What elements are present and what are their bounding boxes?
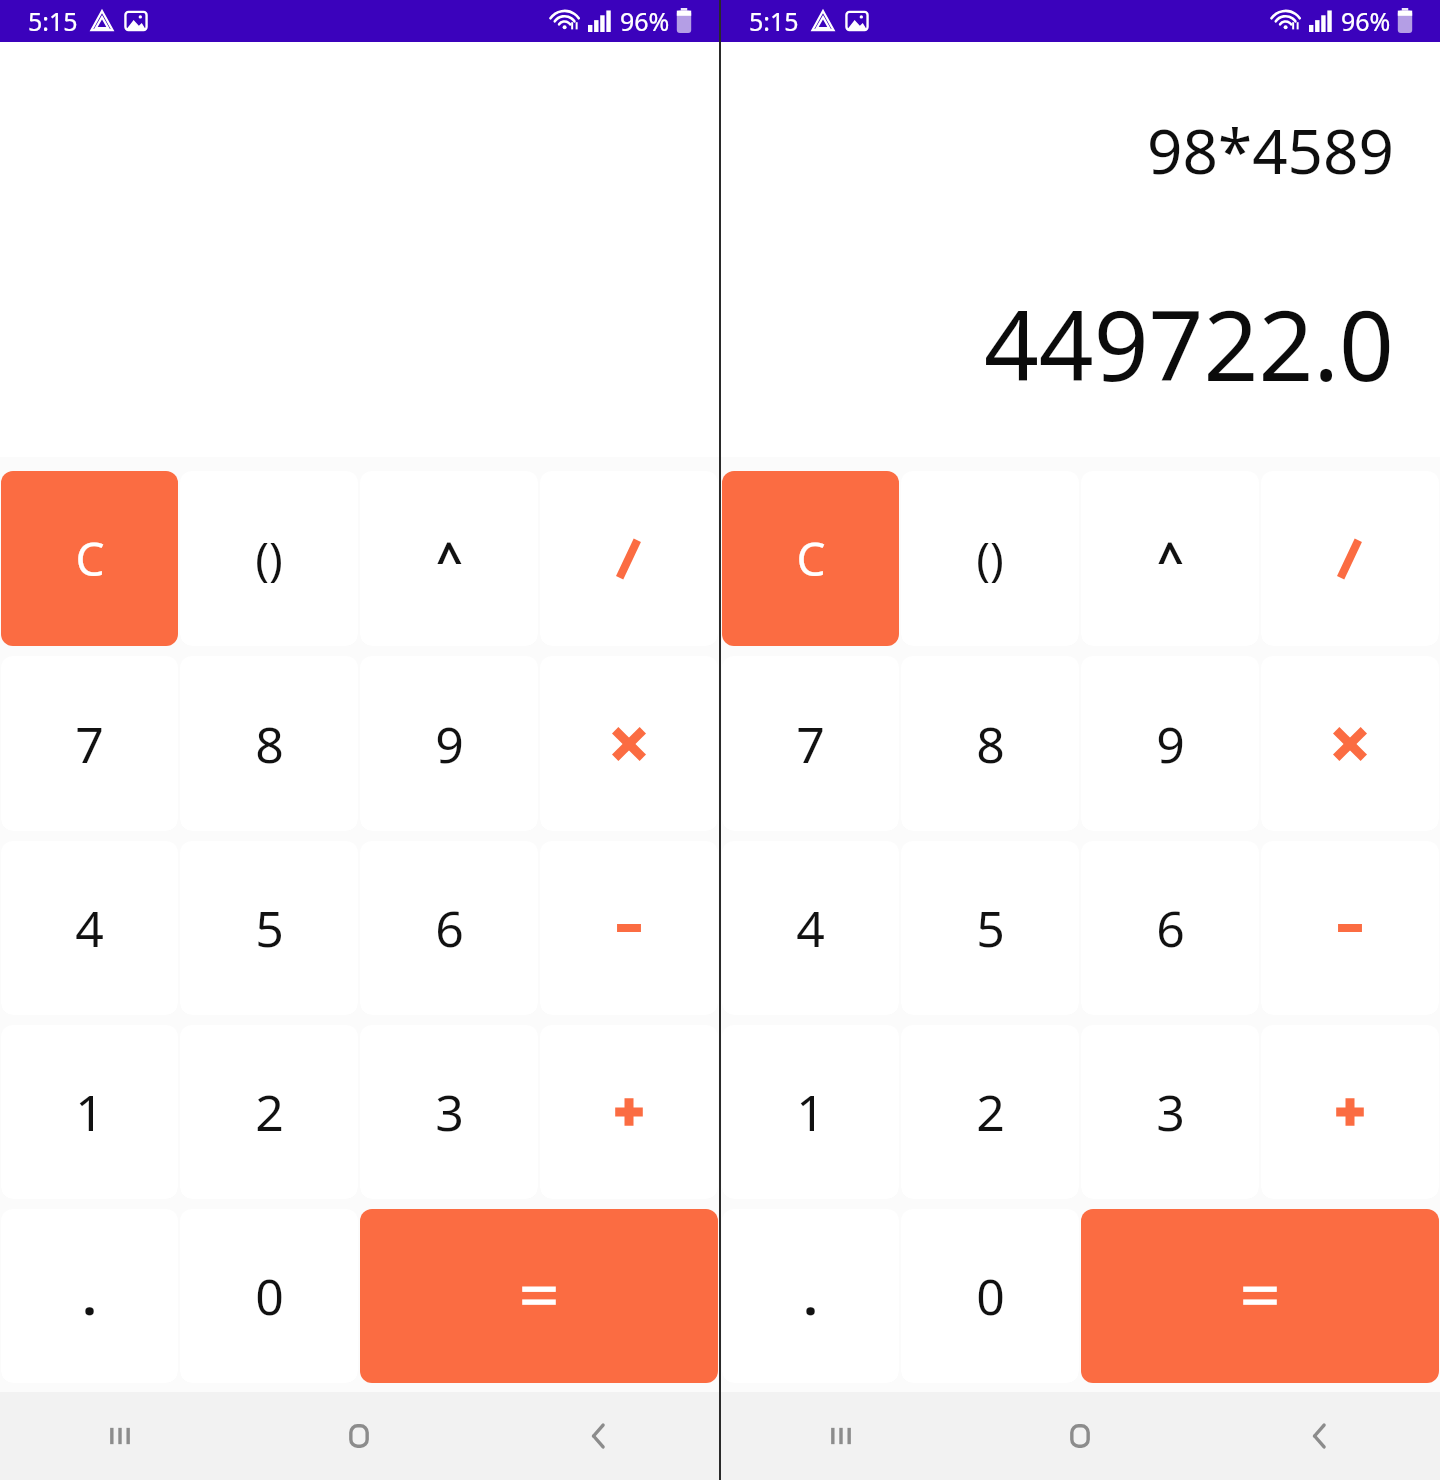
other: Divide <box>1324 533 1376 585</box>
staticText: 6 <box>1156 894 1185 962</box>
staticText: 4 <box>75 894 104 962</box>
staticText: 1 <box>796 1078 825 1146</box>
button[interactable]: . <box>722 1209 899 1383</box>
button[interactable]: 8 <box>180 656 358 831</box>
staticText: 5:15 <box>28 4 78 38</box>
button[interactable]: Back <box>479 1392 719 1480</box>
button[interactable]: () <box>901 471 1079 646</box>
button[interactable]: 4 <box>722 841 899 1015</box>
button[interactable]: Home <box>239 1392 479 1480</box>
button[interactable]: Plus <box>1261 1025 1439 1199</box>
staticText: 9 <box>1156 710 1185 778</box>
staticText: 98*4589 <box>1147 108 1394 192</box>
other: Minus <box>1327 905 1373 951</box>
button[interactable]: Plus <box>540 1025 718 1199</box>
staticText: 2 <box>255 1078 284 1146</box>
button[interactable]: . <box>1 1209 178 1383</box>
button[interactable]: Home <box>960 1392 1200 1480</box>
button[interactable]: Divide <box>540 471 718 646</box>
button[interactable]: 5 <box>180 841 358 1015</box>
staticText: 6 <box>435 894 464 962</box>
staticText: 5 <box>976 894 1005 962</box>
staticText: 5:15 <box>749 4 799 38</box>
button[interactable]: 0 <box>180 1209 358 1383</box>
button[interactable]: Recents <box>0 1392 239 1480</box>
button[interactable]: 5 <box>901 841 1079 1015</box>
button[interactable]: 2 <box>901 1025 1079 1199</box>
other: Multiply <box>606 721 652 767</box>
staticText: 449722.0 <box>983 278 1394 409</box>
staticText: 96% <box>620 4 670 38</box>
button[interactable]: 7 <box>722 656 899 831</box>
staticText: () <box>255 527 283 590</box>
button[interactable]: 1 <box>722 1025 899 1199</box>
staticText: 8 <box>255 710 284 778</box>
other: Plus <box>606 1089 652 1135</box>
staticText: 9 <box>435 710 464 778</box>
button[interactable]: Minus <box>1261 841 1439 1015</box>
button[interactable]: Equals <box>1081 1209 1439 1383</box>
other: Plus <box>1327 1089 1373 1135</box>
button[interactable]: Recents <box>721 1392 960 1480</box>
staticText: 2 <box>976 1078 1005 1146</box>
staticText: 96% <box>1341 4 1391 38</box>
staticText: 4 <box>796 894 825 962</box>
staticText: . <box>82 1262 97 1330</box>
button[interactable]: ^ <box>360 471 538 646</box>
button[interactable]: 8 <box>901 656 1079 831</box>
button[interactable]: 6 <box>360 841 538 1015</box>
button[interactable]: 3 <box>1081 1025 1259 1199</box>
button[interactable]: 7 <box>1 656 178 831</box>
button[interactable]: C <box>1 471 178 646</box>
button[interactable]: 2 <box>180 1025 358 1199</box>
button[interactable]: Divide <box>1261 471 1439 646</box>
button[interactable]: () <box>180 471 358 646</box>
staticText: 1 <box>75 1078 104 1146</box>
staticText: 7 <box>796 710 825 778</box>
button[interactable]: 3 <box>360 1025 538 1199</box>
staticText: C <box>75 527 105 590</box>
button[interactable]: Multiply <box>1261 656 1439 831</box>
other: Multiply <box>1327 721 1373 767</box>
staticText: 0 <box>255 1262 284 1330</box>
staticText: . <box>803 1262 818 1330</box>
button[interactable]: C <box>722 471 899 646</box>
button[interactable]: 1 <box>1 1025 178 1199</box>
other: Minus <box>606 905 652 951</box>
staticText: 7 <box>75 710 104 778</box>
staticText: 5 <box>255 894 284 962</box>
button[interactable]: 6 <box>1081 841 1259 1015</box>
staticText: 0 <box>976 1262 1005 1330</box>
button[interactable]: 4 <box>1 841 178 1015</box>
button[interactable]: 0 <box>901 1209 1079 1383</box>
button[interactable]: Back <box>1200 1392 1440 1480</box>
staticText: 3 <box>1156 1078 1185 1146</box>
staticText: 3 <box>435 1078 464 1146</box>
button[interactable]: Minus <box>540 841 718 1015</box>
staticText: ^ <box>1157 527 1184 590</box>
button[interactable]: Equals <box>360 1209 718 1383</box>
staticText: ^ <box>436 527 463 590</box>
staticText: 8 <box>976 710 1005 778</box>
button[interactable]: ^ <box>1081 471 1259 646</box>
button[interactable]: 9 <box>1081 656 1259 831</box>
staticText: C <box>796 527 826 590</box>
staticText: () <box>976 527 1004 590</box>
button[interactable]: Multiply <box>540 656 718 831</box>
button[interactable]: 9 <box>360 656 538 831</box>
other: Divide <box>603 533 655 585</box>
